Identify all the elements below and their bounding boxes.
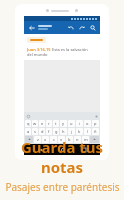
button[interactable]: i [76, 120, 83, 127]
button[interactable]: x [42, 136, 49, 143]
button[interactable]: f [46, 128, 52, 135]
staticText: k [78, 129, 81, 134]
staticText: p [94, 121, 97, 126]
staticText: c [53, 137, 55, 142]
staticText: l [87, 129, 89, 134]
button[interactable]: Redo [77, 23, 86, 32]
button[interactable]: Shift [25, 136, 33, 143]
staticText: r [48, 121, 50, 126]
button[interactable]: u [68, 120, 75, 127]
staticText: j [71, 129, 73, 134]
staticText: y [62, 121, 65, 126]
staticText: a [27, 129, 30, 134]
button[interactable]: Search [88, 23, 97, 32]
button[interactable]: t [53, 120, 59, 127]
button[interactable]: h [60, 128, 67, 135]
staticText: Guarda tus notas [0, 137, 124, 177]
button[interactable]: Back [36, 145, 45, 154]
staticText: g [55, 129, 58, 134]
button[interactable]: v [58, 136, 65, 143]
staticText: m [84, 137, 88, 142]
staticText: v [60, 137, 63, 142]
button[interactable]: Settings [94, 114, 98, 118]
button[interactable]: l [84, 128, 91, 135]
button[interactable]: Back [27, 23, 36, 32]
button[interactable]: n [74, 136, 81, 143]
staticText: Pasajes entre paréntesis [5, 180, 120, 194]
button[interactable]: p [92, 120, 99, 127]
staticText: q [27, 121, 30, 126]
button[interactable]: e [39, 120, 45, 127]
staticText: t [55, 121, 57, 126]
button[interactable]: d [39, 128, 45, 135]
button[interactable]: s [32, 128, 38, 135]
button[interactable]: Backspace [90, 136, 99, 143]
button[interactable]: y [60, 120, 67, 127]
staticText: u [70, 121, 73, 126]
staticText: ñ [94, 129, 97, 134]
button[interactable]: c [50, 136, 57, 143]
button[interactable]: b [66, 136, 73, 143]
button[interactable]: Recents [79, 145, 88, 154]
button[interactable]: Home [58, 145, 67, 154]
staticText: x [44, 137, 47, 142]
staticText: Juan 3:16-15 [27, 47, 52, 52]
button[interactable] [27, 37, 46, 43]
staticText: n [76, 137, 79, 142]
staticText: s [34, 129, 36, 134]
button[interactable]: o [84, 120, 91, 127]
staticText: z [37, 137, 39, 142]
staticText: b [68, 137, 71, 142]
staticText: e [41, 121, 44, 126]
button[interactable]: Emoji [26, 114, 30, 118]
staticText: i [79, 121, 81, 126]
button[interactable]: r [46, 120, 52, 127]
staticText: Esta es la salvación [52, 47, 88, 52]
staticText: w [33, 121, 37, 126]
button[interactable]: Undo [66, 23, 75, 32]
button[interactable]: g [53, 128, 59, 135]
staticText: h [62, 129, 65, 134]
staticText: d [41, 129, 44, 134]
button[interactable]: m [82, 136, 89, 143]
button[interactable]: ñ [92, 128, 99, 135]
staticText: del mundo [27, 52, 48, 57]
button[interactable]: a [25, 128, 31, 135]
button[interactable]: z [34, 136, 41, 143]
staticText: o [86, 121, 89, 126]
button[interactable]: q [25, 120, 31, 127]
button[interactable]: j [68, 128, 75, 135]
button[interactable]: k [76, 128, 83, 135]
staticText: f [48, 129, 50, 134]
button[interactable]: w [32, 120, 38, 127]
